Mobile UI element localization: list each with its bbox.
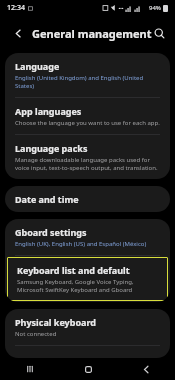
button[interactable]: Language [5, 53, 170, 97]
button[interactable]: Back [9, 24, 27, 42]
staticText: Language packs [15, 142, 88, 154]
staticText: Language [15, 60, 60, 72]
staticText: Physical keyboard [15, 316, 96, 328]
button[interactable]: Mouse and trackpad [5, 346, 170, 358]
staticText: Manage downloadable language packs used … [15, 156, 160, 172]
button[interactable]: Language packs [5, 135, 170, 179]
button[interactable]: Search [152, 24, 166, 42]
button[interactable]: App languages [5, 98, 170, 134]
staticText: General management [32, 26, 152, 41]
staticText: Date and time [15, 193, 79, 205]
button[interactable]: Date and time [5, 186, 170, 212]
staticText: 94% [149, 4, 161, 12]
staticText: Samsung Keyboard, Google Voice Typing, M… [17, 278, 158, 294]
button[interactable]: Back [117, 358, 175, 380]
staticText: English (United Kingdom) and English (Un… [15, 74, 160, 90]
staticText: English (UK), English (US) and Español (… [15, 240, 147, 248]
staticText: Choose the language you want to use for … [15, 119, 160, 127]
button[interactable]: Home [59, 358, 117, 380]
staticText: App languages [15, 105, 82, 117]
staticText: Keyboard list and default [17, 264, 130, 276]
button[interactable]: Recents [0, 358, 59, 380]
button[interactable]: Physical keyboard [5, 309, 170, 345]
button[interactable]: Gboard settings [5, 219, 170, 255]
button[interactable]: Keyboard list and default [7, 257, 168, 301]
staticText: Gboard settings [15, 226, 87, 238]
staticText: Not connected [15, 330, 57, 338]
staticText: 12:34 [7, 3, 25, 13]
